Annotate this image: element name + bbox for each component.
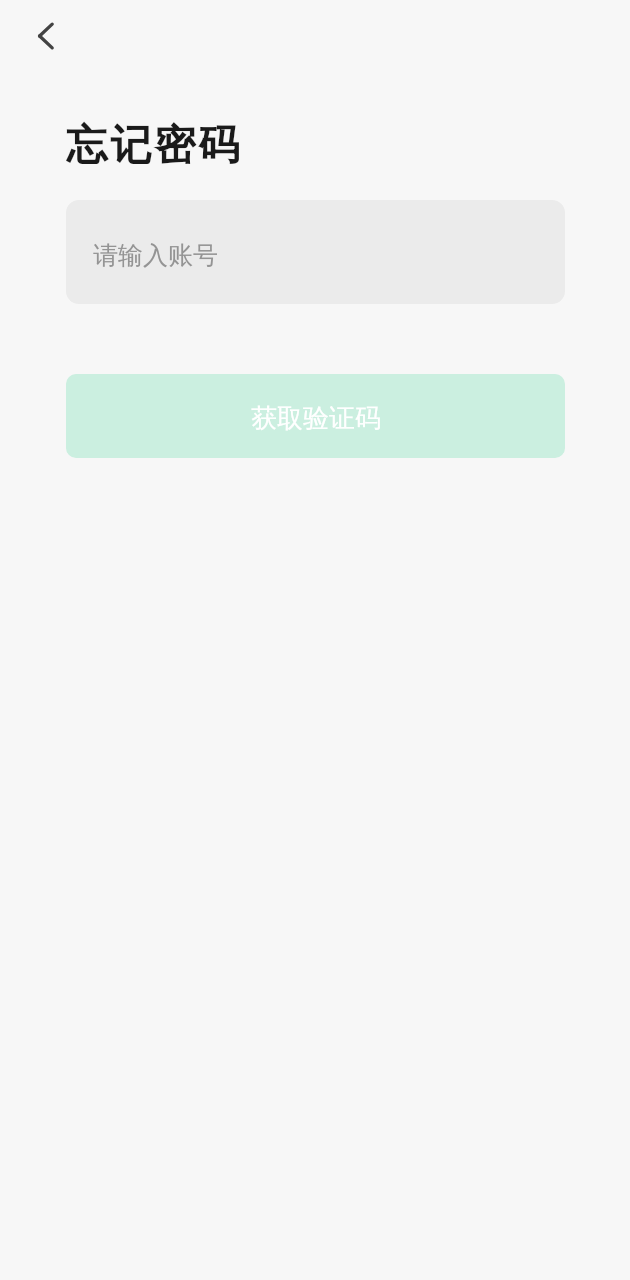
button[interactable]: Back: [21, 12, 69, 60]
staticText: 获取验证码: [251, 402, 381, 435]
button[interactable]: 请输入账号: [66, 200, 565, 304]
staticText: 请输入账号: [93, 240, 218, 271]
staticText: 忘记密码: [66, 120, 243, 172]
button[interactable]: 获取验证码: [66, 374, 565, 458]
